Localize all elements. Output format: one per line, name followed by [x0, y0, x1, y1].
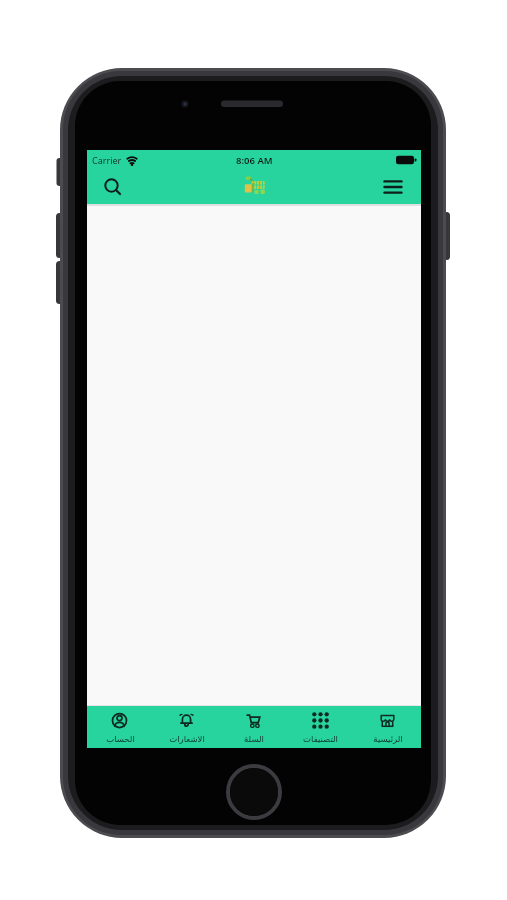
staticText: الاشعارات: [169, 734, 205, 744]
button[interactable]: التصنيفات: [287, 706, 354, 748]
staticText: السلة: [244, 734, 264, 744]
staticText: التصنيفات: [303, 734, 338, 744]
button[interactable]: [380, 174, 406, 200]
button[interactable]: الحساب: [87, 706, 153, 748]
button[interactable]: السلة: [220, 706, 287, 748]
staticText: الرئيسية: [373, 734, 403, 744]
staticText: الحساب: [106, 734, 135, 744]
staticText: Carrier: [92, 154, 122, 166]
button[interactable]: [240, 173, 268, 197]
staticText: 8:06 AM: [236, 154, 273, 167]
button[interactable]: الاشعارات: [153, 706, 220, 748]
button[interactable]: [99, 173, 127, 201]
button[interactable]: الرئيسية: [354, 706, 421, 748]
